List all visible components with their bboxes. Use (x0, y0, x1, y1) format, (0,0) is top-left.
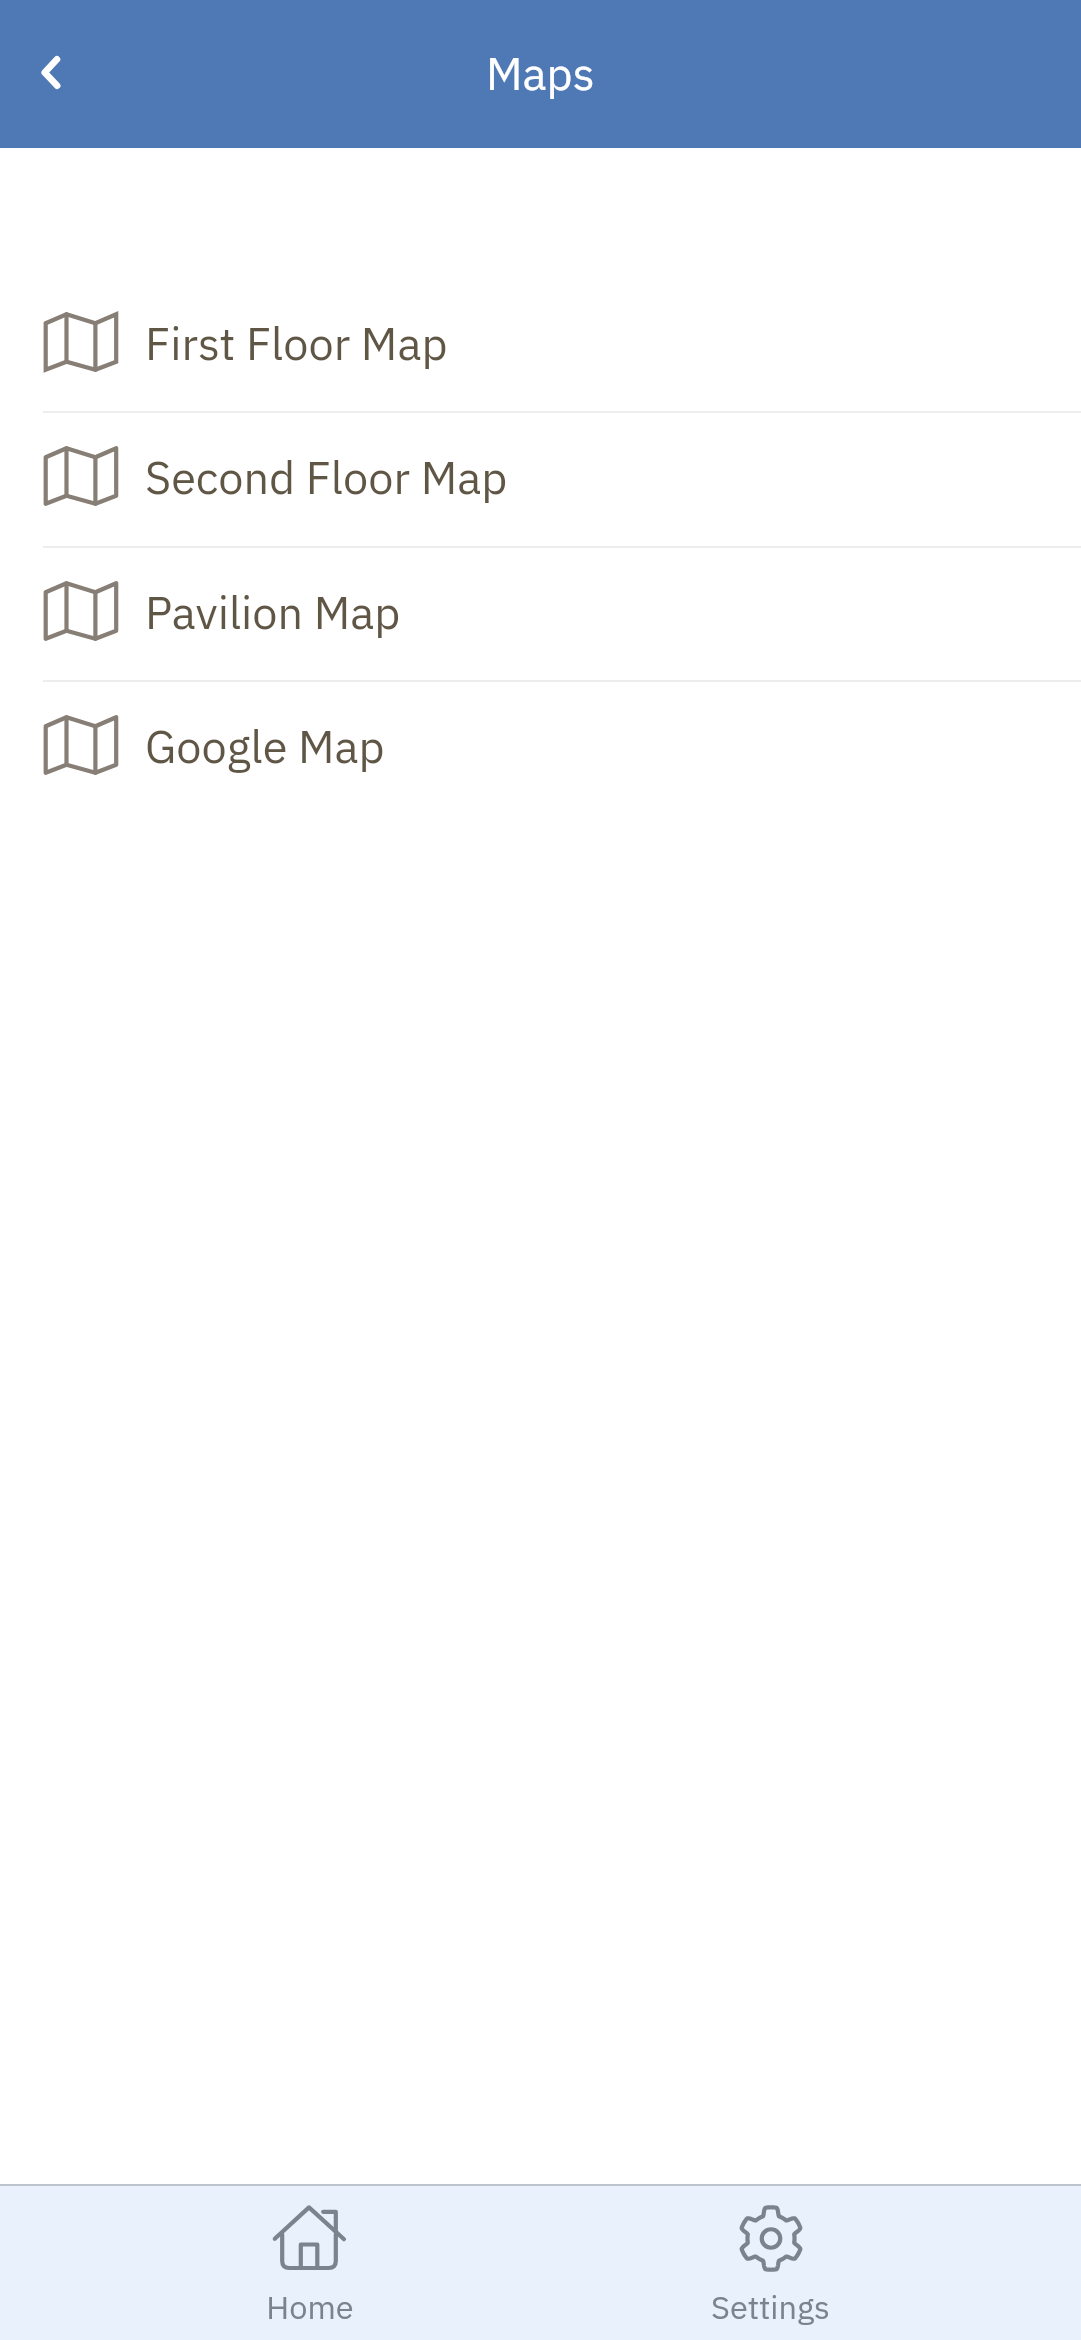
button[interactable]: Back (0, 0, 100, 148)
staticText: Google Map (145, 717, 385, 776)
other: Settings (734, 2205, 808, 2272)
button[interactable]: Settings (540, 2186, 1001, 2340)
button[interactable]: First Floor Map (0, 277, 1081, 412)
staticText: Settings (711, 2286, 830, 2328)
button[interactable]: Home (80, 2186, 540, 2340)
button[interactable]: Pavilion Map (0, 546, 1081, 681)
staticText: Home (266, 2286, 354, 2328)
button[interactable]: Second Floor Map (0, 411, 1081, 546)
button[interactable]: Google Map (0, 680, 1081, 815)
staticText: Second Floor Map (145, 448, 508, 507)
other: Home (273, 2205, 347, 2272)
staticText: Maps (486, 44, 595, 103)
staticText: First Floor Map (145, 314, 448, 373)
staticText: Pavilion Map (145, 583, 401, 642)
